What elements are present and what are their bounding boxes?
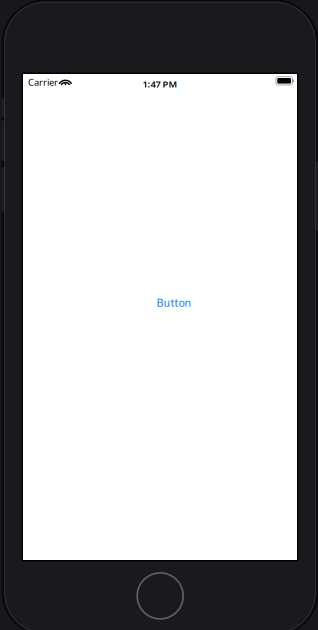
staticText: Button xyxy=(156,295,191,310)
staticText: 1:47 PM xyxy=(142,78,177,90)
staticText: Carrier xyxy=(28,76,58,88)
button[interactable]: Button xyxy=(156,295,191,310)
